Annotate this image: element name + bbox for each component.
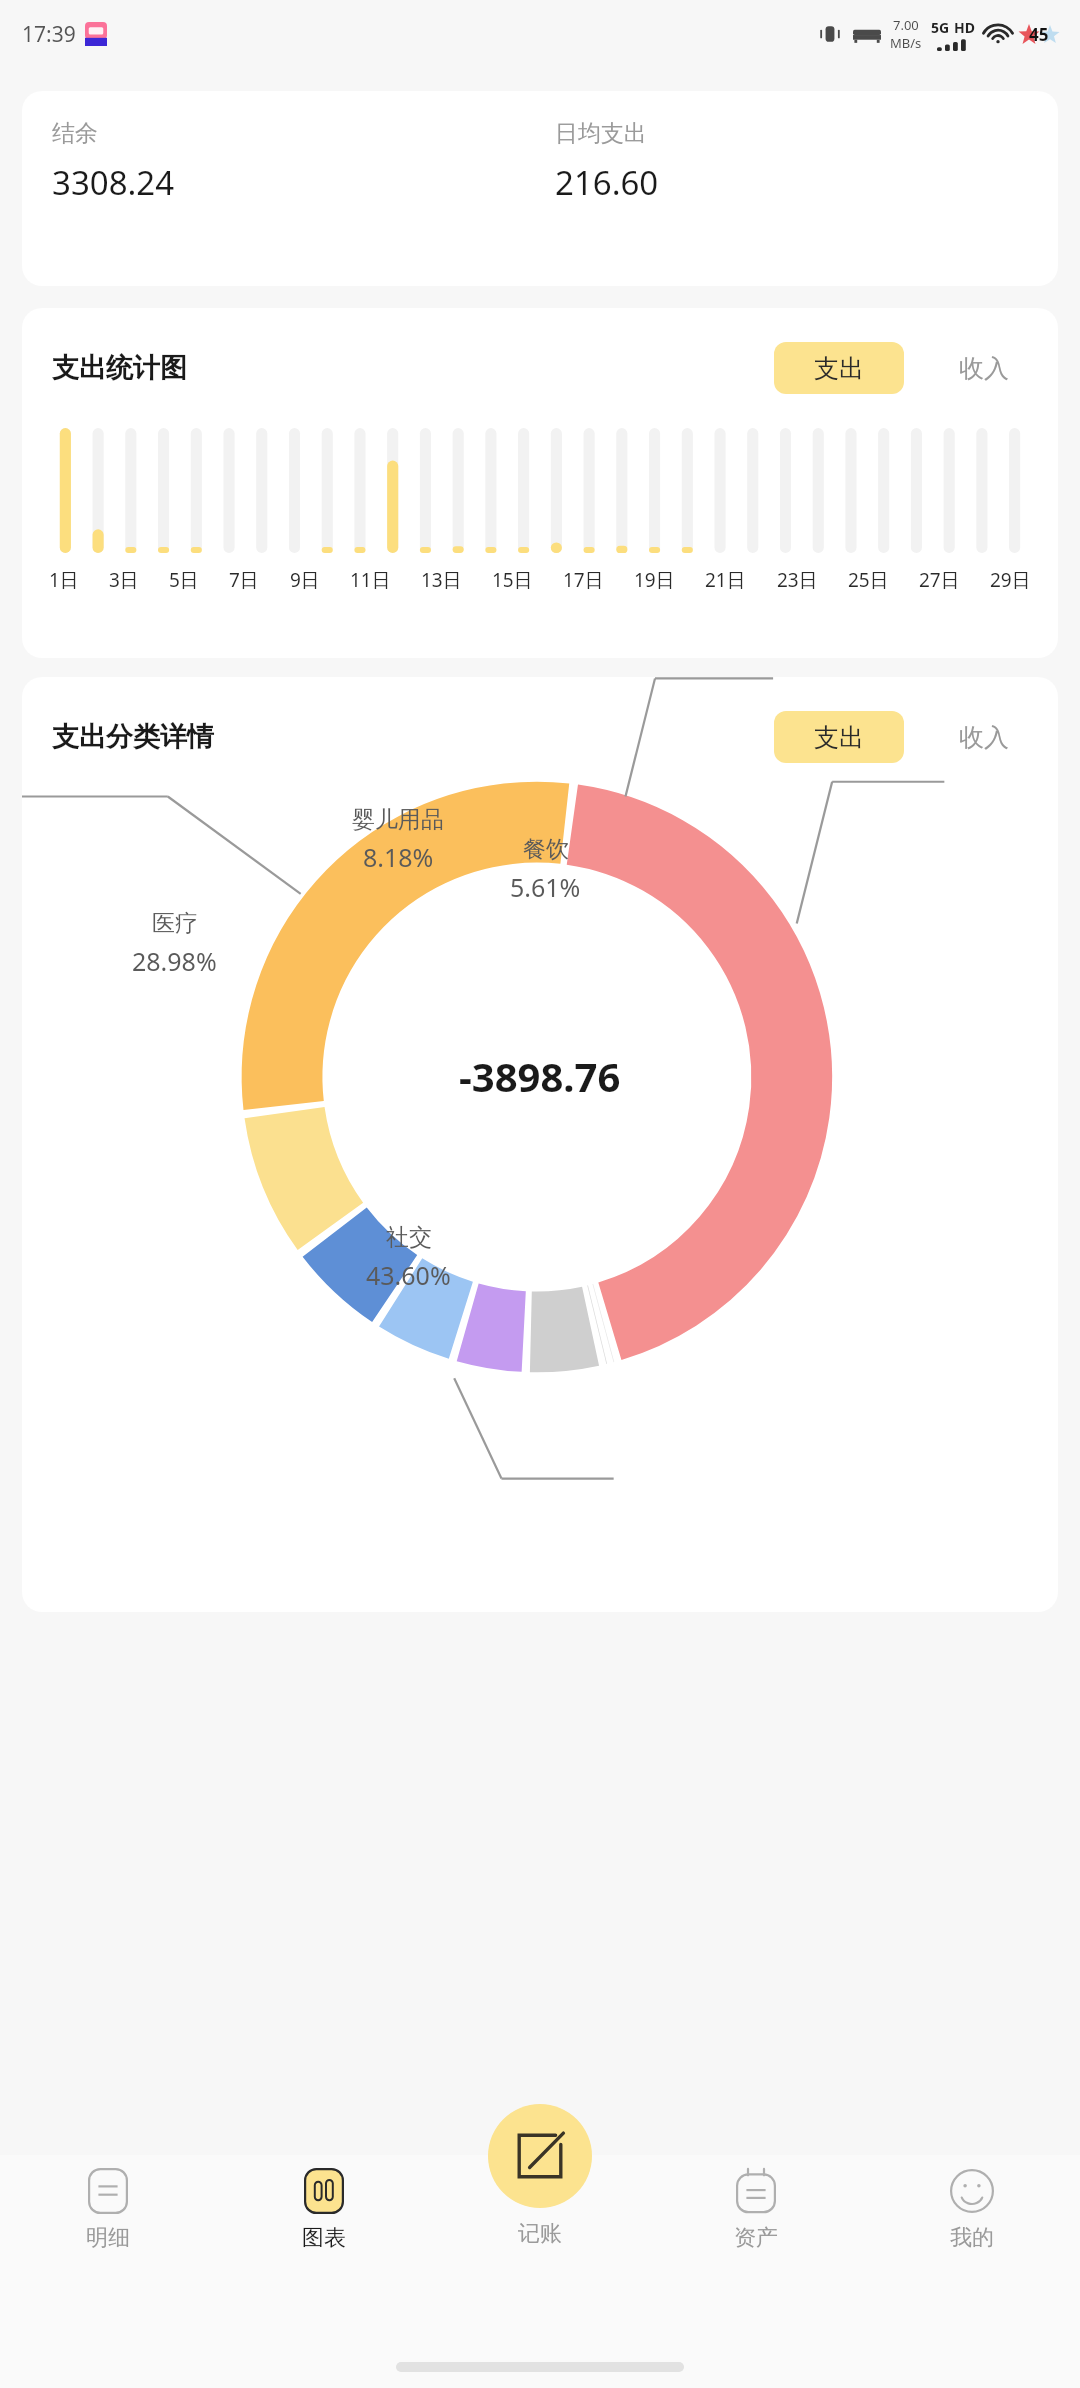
button[interactable]: 记账: [488, 2104, 592, 2208]
staticText: 43.60%: [366, 1258, 451, 1292]
staticText: 5.61%: [510, 870, 581, 904]
staticText: 9日: [290, 567, 320, 593]
staticText: -3898.76: [459, 1049, 621, 1103]
staticText: 7.00: [893, 16, 919, 34]
button[interactable]: 资产: [648, 2168, 864, 2310]
staticText: 7日: [229, 567, 259, 593]
staticText: 日均支出: [555, 119, 647, 148]
staticText: MB/s: [890, 34, 922, 52]
staticText: 医疗: [152, 909, 198, 938]
staticText: 收入: [959, 722, 1009, 753]
staticText: 28.98%: [132, 944, 217, 978]
staticText: 收入: [959, 353, 1009, 384]
staticText: 5G: [931, 18, 950, 37]
staticText: 餐饮: [523, 835, 569, 864]
staticText: 支出统计图: [52, 351, 187, 385]
staticText: 216.60: [555, 160, 659, 205]
staticText: 45: [1029, 23, 1049, 46]
staticText: 15日: [492, 567, 533, 593]
staticText: 8.18%: [363, 840, 434, 874]
staticText: 婴儿用品: [352, 805, 444, 834]
staticText: 25日: [848, 567, 889, 593]
button[interactable]: 结余: [22, 91, 1058, 286]
staticText: 29日: [990, 567, 1031, 593]
staticText: 21日: [705, 567, 746, 593]
button[interactable]: 图表: [216, 2168, 432, 2310]
staticText: 1日: [49, 567, 79, 593]
button[interactable]: 明细: [0, 2168, 216, 2310]
staticText: 明细: [86, 2224, 130, 2252]
button[interactable]: 收入: [946, 342, 1022, 394]
staticText: 23日: [777, 567, 818, 593]
staticText: 17:39: [22, 20, 76, 49]
staticText: 支出: [814, 353, 864, 384]
staticText: HD: [954, 18, 975, 37]
staticText: 3日: [109, 567, 139, 593]
staticText: 资产: [734, 2224, 778, 2252]
staticText: 19日: [634, 567, 675, 593]
staticText: 支出分类详情: [52, 720, 214, 754]
staticText: 记账: [518, 2220, 562, 2248]
staticText: 支出: [814, 722, 864, 753]
button[interactable]: 支出: [774, 711, 904, 763]
button[interactable]: 支出: [774, 342, 904, 394]
staticText: 5日: [169, 567, 199, 593]
staticText: 我的: [950, 2224, 994, 2252]
button[interactable]: 我的: [864, 2168, 1080, 2310]
staticText: 11日: [350, 567, 391, 593]
staticText: 图表: [302, 2224, 346, 2252]
staticText: 27日: [919, 567, 960, 593]
staticText: 13日: [421, 567, 462, 593]
staticText: 3308.24: [52, 160, 175, 205]
staticText: 社交: [386, 1223, 432, 1252]
button[interactable]: 收入: [946, 711, 1022, 763]
staticText: 结余: [52, 119, 98, 148]
staticText: 17日: [563, 567, 604, 593]
